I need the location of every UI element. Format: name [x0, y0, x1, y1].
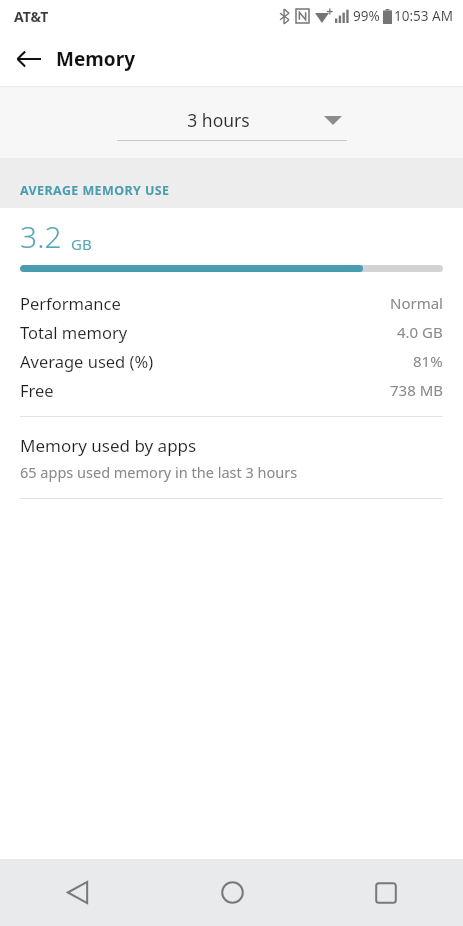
button[interactable]: 3 hours	[117, 100, 347, 148]
button[interactable]: Memory used by apps	[0, 417, 463, 498]
staticText: 99%	[353, 7, 380, 25]
staticText: Free	[20, 379, 54, 401]
staticText: GB	[71, 234, 92, 254]
staticText: Memory used by apps	[20, 434, 197, 457]
staticText: 738 MB	[390, 380, 443, 400]
button[interactable]: Free	[0, 375, 463, 404]
staticText: 65 apps used memory in the last 3 hours	[20, 462, 298, 482]
button[interactable]: Home	[155, 859, 309, 926]
staticText: Average used (%)	[20, 350, 154, 372]
staticText: 3.2	[20, 216, 62, 257]
staticText: 81%	[413, 351, 443, 371]
button[interactable]: Recent apps	[309, 859, 463, 926]
button[interactable]: Back	[0, 859, 155, 926]
button[interactable]: Total memory	[0, 317, 463, 346]
button[interactable]: Back	[8, 38, 50, 80]
staticText: Normal	[390, 293, 443, 313]
button[interactable]: Performance	[0, 288, 463, 317]
staticText: Total memory	[20, 321, 128, 343]
staticText: 3 hours	[187, 108, 250, 132]
button[interactable]: Average used (%)	[0, 346, 463, 375]
staticText: Performance	[20, 292, 121, 314]
staticText: Memory	[56, 46, 136, 72]
staticText: AT&T	[14, 7, 49, 26]
staticText: 4.0 GB	[397, 322, 443, 342]
staticText: AVERAGE MEMORY USE	[20, 182, 170, 199]
staticText: 10:53 AM	[394, 7, 453, 25]
